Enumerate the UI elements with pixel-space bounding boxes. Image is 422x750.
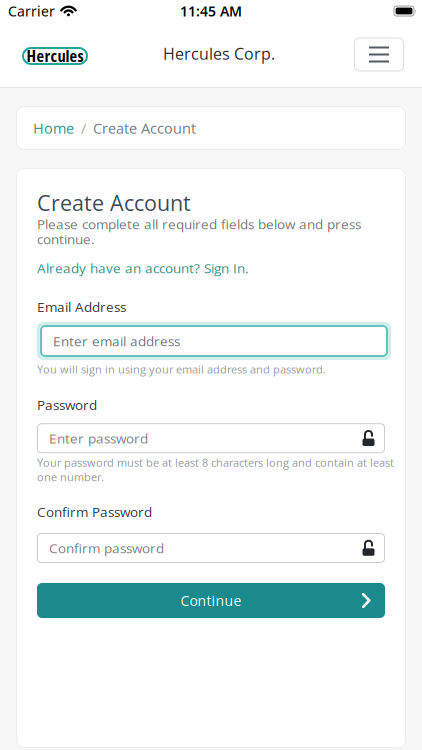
button[interactable]: Confirm password [37, 533, 385, 563]
button[interactable]: Home [33, 120, 74, 136]
staticText: Please complete all required fields belo… [37, 216, 361, 247]
button[interactable]: Continue [37, 583, 385, 618]
staticText: Confirm Password [37, 504, 152, 519]
staticText: Home [33, 120, 74, 136]
staticText: Already have an account? Sign In. [37, 261, 249, 275]
staticText: Create Account [93, 120, 196, 136]
staticText: Carrier [8, 3, 55, 19]
staticText: Email Address [37, 299, 126, 314]
staticText: 11:45 AM [180, 3, 242, 19]
staticText: Hercules Corp. [163, 45, 275, 62]
staticText: / [81, 120, 86, 136]
staticText: Confirm password [49, 541, 164, 555]
button[interactable]: Already have an account? Sign In. [37, 261, 249, 275]
staticText: Your password must be at least 8 charact… [37, 455, 394, 484]
staticText: Hercules [26, 46, 83, 64]
staticText: Password [37, 397, 97, 412]
button[interactable]: Enter password [37, 423, 385, 453]
button[interactable]: Hercules home [22, 47, 88, 65]
staticText: Create Account [37, 191, 191, 214]
button[interactable]: Menu [354, 37, 404, 71]
button[interactable]: Enter email address [37, 322, 391, 360]
staticText: You will sign in using your email addres… [37, 362, 326, 376]
staticText: Continue [180, 593, 241, 608]
staticText: Enter password [49, 431, 148, 446]
staticText: Enter email address [53, 334, 180, 348]
